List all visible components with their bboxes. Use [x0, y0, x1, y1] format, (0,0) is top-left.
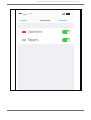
- staticText: SFR: [23, 12, 28, 15]
- button[interactable]: Rappels: [18, 36, 74, 44]
- button[interactable]: Activer Calendriers: [62, 30, 70, 34]
- button[interactable]: Activer Rappels: [62, 38, 70, 42]
- button[interactable]: Envoyer: [59, 19, 68, 22]
- button[interactable]: Calendriers: [18, 28, 74, 36]
- button[interactable]: Annuler: [20, 19, 28, 22]
- staticText: Partager un calendrier iCloud depuis un …: [36, 0, 84, 3]
- staticText: 4G: [29, 12, 32, 15]
- staticText: Calendriers: [28, 30, 43, 34]
- staticText: Rappels: [28, 38, 38, 42]
- staticText: Calendrier: [40, 19, 51, 22]
